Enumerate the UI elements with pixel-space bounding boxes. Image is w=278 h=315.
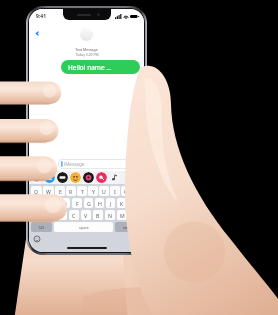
button[interactable]: E [55,186,65,196]
staticText: Z [49,212,52,219]
button[interactable]: iMessage [58,159,129,169]
button[interactable]: X [57,210,67,220]
staticText: J [110,200,112,207]
staticText: Q [34,188,39,195]
staticText: K [120,200,124,207]
staticText: W [46,188,51,195]
button[interactable]: App 2 [57,172,68,183]
button[interactable]: V [81,210,91,220]
button[interactable]: Keyboard modifier [31,210,43,220]
button[interactable]: space [54,222,113,232]
button[interactable]: Back [32,28,42,38]
staticText: A [39,200,43,207]
button[interactable]: I [110,186,120,196]
staticText: B [96,212,100,219]
button[interactable]: Hello! name ... [61,60,140,74]
button[interactable]: O [121,186,131,196]
button[interactable]: Q [31,186,42,196]
staticText: U [102,188,106,195]
button[interactable]: D [60,198,70,208]
staticText: V [84,212,88,219]
staticText: F [76,200,79,207]
staticText: O [124,188,129,195]
button[interactable]: W [43,186,54,196]
button[interactable]: App 1 [44,172,55,183]
button[interactable]: M [117,210,127,220]
button[interactable]: Camera [32,159,42,169]
staticText: 9:41 [36,13,46,20]
staticText: G [87,200,91,207]
button[interactable]: App 0 [31,172,42,183]
button[interactable]: B [93,210,103,220]
staticText: I [114,188,116,195]
button[interactable]: K [117,198,126,208]
button[interactable]: N [105,210,115,220]
button[interactable]: F [72,198,82,208]
staticText: H [98,200,102,207]
button[interactable]: Emoji [33,235,41,243]
button[interactable]: App 4 [83,172,94,183]
button[interactable]: iMessage apps [45,159,55,169]
button[interactable]: G [84,198,93,208]
button[interactable] [80,28,93,41]
staticText: R [69,188,73,195]
staticText: E [59,188,62,195]
button[interactable]: H [95,198,104,208]
button[interactable]: A [36,198,46,208]
button[interactable]: U [99,186,109,196]
button[interactable]: Z [45,210,55,220]
staticText: iMessage [64,161,85,167]
staticText: 123 [38,225,45,230]
staticText: X [60,212,64,219]
button[interactable]: Y [88,186,98,196]
staticText: space [79,225,89,230]
staticText: N [108,212,112,219]
button[interactable]: return [115,222,142,232]
button[interactable]: J [106,198,115,208]
staticText: Text Message [75,47,98,52]
staticText: M [120,212,125,219]
button[interactable]: T [77,186,87,196]
button[interactable]: Back [29,23,144,43]
staticText: D [63,200,67,207]
button[interactable]: C [69,210,79,220]
staticText: Today 3:29 PM [75,52,99,57]
staticText: return [123,225,134,230]
button[interactable]: App 5 [96,172,107,183]
staticText: Hello! name ... [68,63,112,72]
button[interactable]: App 3 [70,172,81,183]
button[interactable]: R [66,186,76,196]
button[interactable]: 123 [31,222,52,232]
staticText: C [72,212,76,219]
button[interactable]: App 6 [109,172,120,183]
staticText: T [81,188,84,195]
staticText: Y [92,188,95,195]
